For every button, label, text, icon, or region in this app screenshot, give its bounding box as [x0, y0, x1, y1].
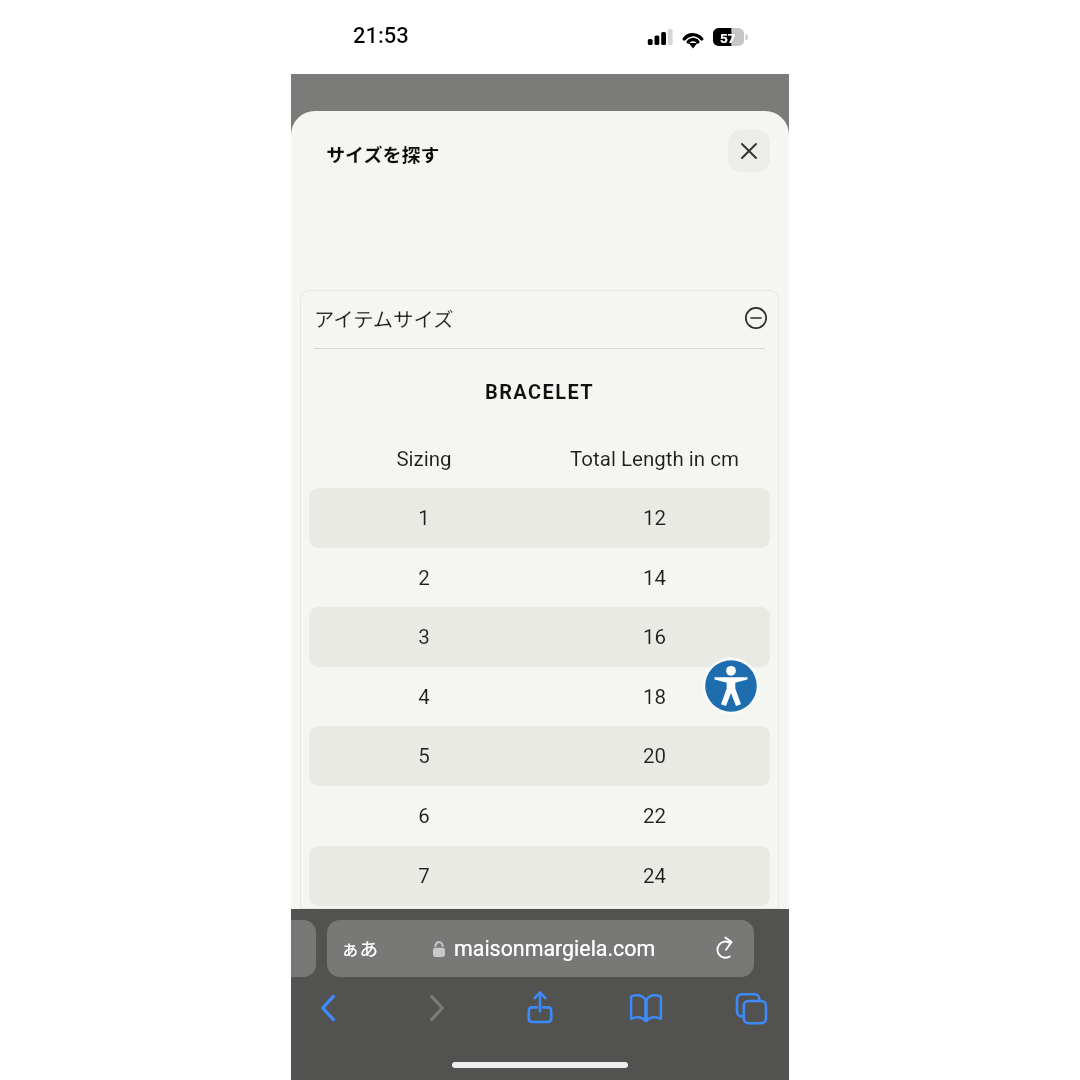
staticText: 14	[539, 566, 770, 590]
staticText: 5	[309, 744, 539, 768]
staticText: アイテムサイズ	[314, 303, 454, 332]
staticText: 18	[539, 685, 770, 709]
staticText: 20	[539, 744, 770, 768]
staticText: 6	[309, 804, 539, 828]
staticText: ぁあ	[341, 935, 379, 962]
button[interactable]: Close	[728, 130, 770, 172]
staticText: maisonmargiela.com	[454, 936, 656, 961]
button[interactable]: Share	[517, 985, 563, 1031]
button[interactable]: Collapse section	[738, 300, 774, 336]
staticText: 2	[309, 566, 539, 590]
staticText: 21:53	[353, 23, 409, 49]
staticText: Total Length in cm	[539, 447, 770, 471]
staticText: サイズを探す	[326, 140, 440, 168]
staticText: Sizing	[309, 447, 539, 471]
staticText: BRACELET	[300, 380, 779, 403]
button[interactable]: Address bar maisonmargiela.com	[327, 920, 754, 977]
other: Reload	[715, 938, 736, 959]
staticText: 3	[309, 625, 539, 649]
button[interactable]	[300, 291, 779, 347]
staticText: 7	[309, 864, 539, 888]
staticText: 24	[539, 864, 770, 888]
staticText: 1	[309, 506, 539, 530]
staticText: 4	[309, 685, 539, 709]
button[interactable]: Bookmarks	[623, 985, 669, 1031]
button[interactable]: Accessibility options	[702, 657, 760, 715]
button[interactable]: Back	[306, 985, 352, 1031]
button[interactable]: Tabs	[728, 985, 774, 1031]
staticText: 57	[720, 30, 736, 46]
button[interactable]: Forward	[413, 985, 459, 1031]
staticText: 12	[539, 506, 770, 530]
staticText: 16	[539, 625, 770, 649]
staticText: 22	[539, 804, 770, 828]
